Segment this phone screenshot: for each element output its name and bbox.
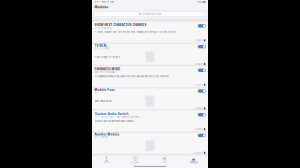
button[interactable]: SHOW NEXT CHARACTER CHANGES <box>92 22 208 42</box>
button[interactable]: Enable module <box>198 133 206 138</box>
button[interactable]: Module Four <box>92 88 208 109</box>
staticText: ENHANCED MODE <box>95 68 121 71</box>
button[interactable]: Details <box>92 107 208 110</box>
staticText: 100% <box>197 1 202 3</box>
staticText: List <box>162 161 166 164</box>
button[interactable]: Search <box>92 155 121 165</box>
staticText: Adds images to the grid. <box>95 55 121 58</box>
staticText: Modules <box>95 5 109 9</box>
button[interactable]: Search modules <box>92 10 208 19</box>
button[interactable]: Enable module <box>198 112 206 117</box>
button[interactable]: Another Module <box>92 133 208 153</box>
button[interactable]: TV REAL <box>92 44 208 65</box>
staticText: Details <box>195 107 203 110</box>
staticText: Search <box>103 161 109 164</box>
staticText: Discover <box>131 161 140 164</box>
button[interactable]: ENHANCED MODE <box>92 66 208 87</box>
staticText: 9:41 Mon 14 Jun <box>94 0 113 3</box>
staticText: v1.2.3 · tvreal <box>95 47 109 50</box>
button[interactable]: Details <box>92 127 208 131</box>
staticText: TV REAL <box>95 44 108 47</box>
staticText: Another Module <box>95 133 120 136</box>
button[interactable]: Modules <box>179 155 208 165</box>
staticText: Details <box>195 63 203 65</box>
staticText: v1.0 · by the team · adds additional fun… <box>95 116 140 118</box>
staticText: Custom Audio Switch <box>95 112 129 116</box>
button[interactable]: Details <box>92 39 208 42</box>
staticText: Details <box>195 39 203 42</box>
staticText: Details <box>195 83 203 86</box>
staticText: A small module that lets you see what ch… <box>95 31 177 33</box>
button[interactable]: Enable module <box>198 23 206 29</box>
staticText: Search modules <box>142 12 161 16</box>
button[interactable]: Enable module <box>198 88 206 94</box>
button[interactable]: List <box>150 155 179 165</box>
button[interactable]: Details <box>92 62 208 66</box>
staticText: v2.4 · extras <box>95 136 108 138</box>
button[interactable]: Enable module <box>198 44 206 49</box>
staticText: Quickly switch between audio outputs. <box>95 120 135 123</box>
button[interactable]: Details <box>92 83 208 86</box>
staticText: Details <box>195 128 203 130</box>
staticText: Module Four <box>95 88 115 92</box>
staticText: SHOW NEXT CHARACTER CHANGES <box>95 23 147 27</box>
staticText: v0.1 <box>95 92 98 94</box>
staticText: Short description. <box>95 100 113 103</box>
staticText: Details <box>195 151 203 154</box>
button[interactable]: Discover <box>121 155 150 165</box>
staticText: by communityuser <box>95 27 112 29</box>
button[interactable]: Details <box>92 151 208 155</box>
button[interactable]: Enable module <box>198 68 206 73</box>
staticText: Modules <box>189 161 197 164</box>
staticText: adds extra functionality <box>95 71 116 73</box>
staticText: An advanced module that adds more settin… <box>95 75 170 78</box>
button[interactable]: Custom Audio Switch <box>92 111 208 131</box>
